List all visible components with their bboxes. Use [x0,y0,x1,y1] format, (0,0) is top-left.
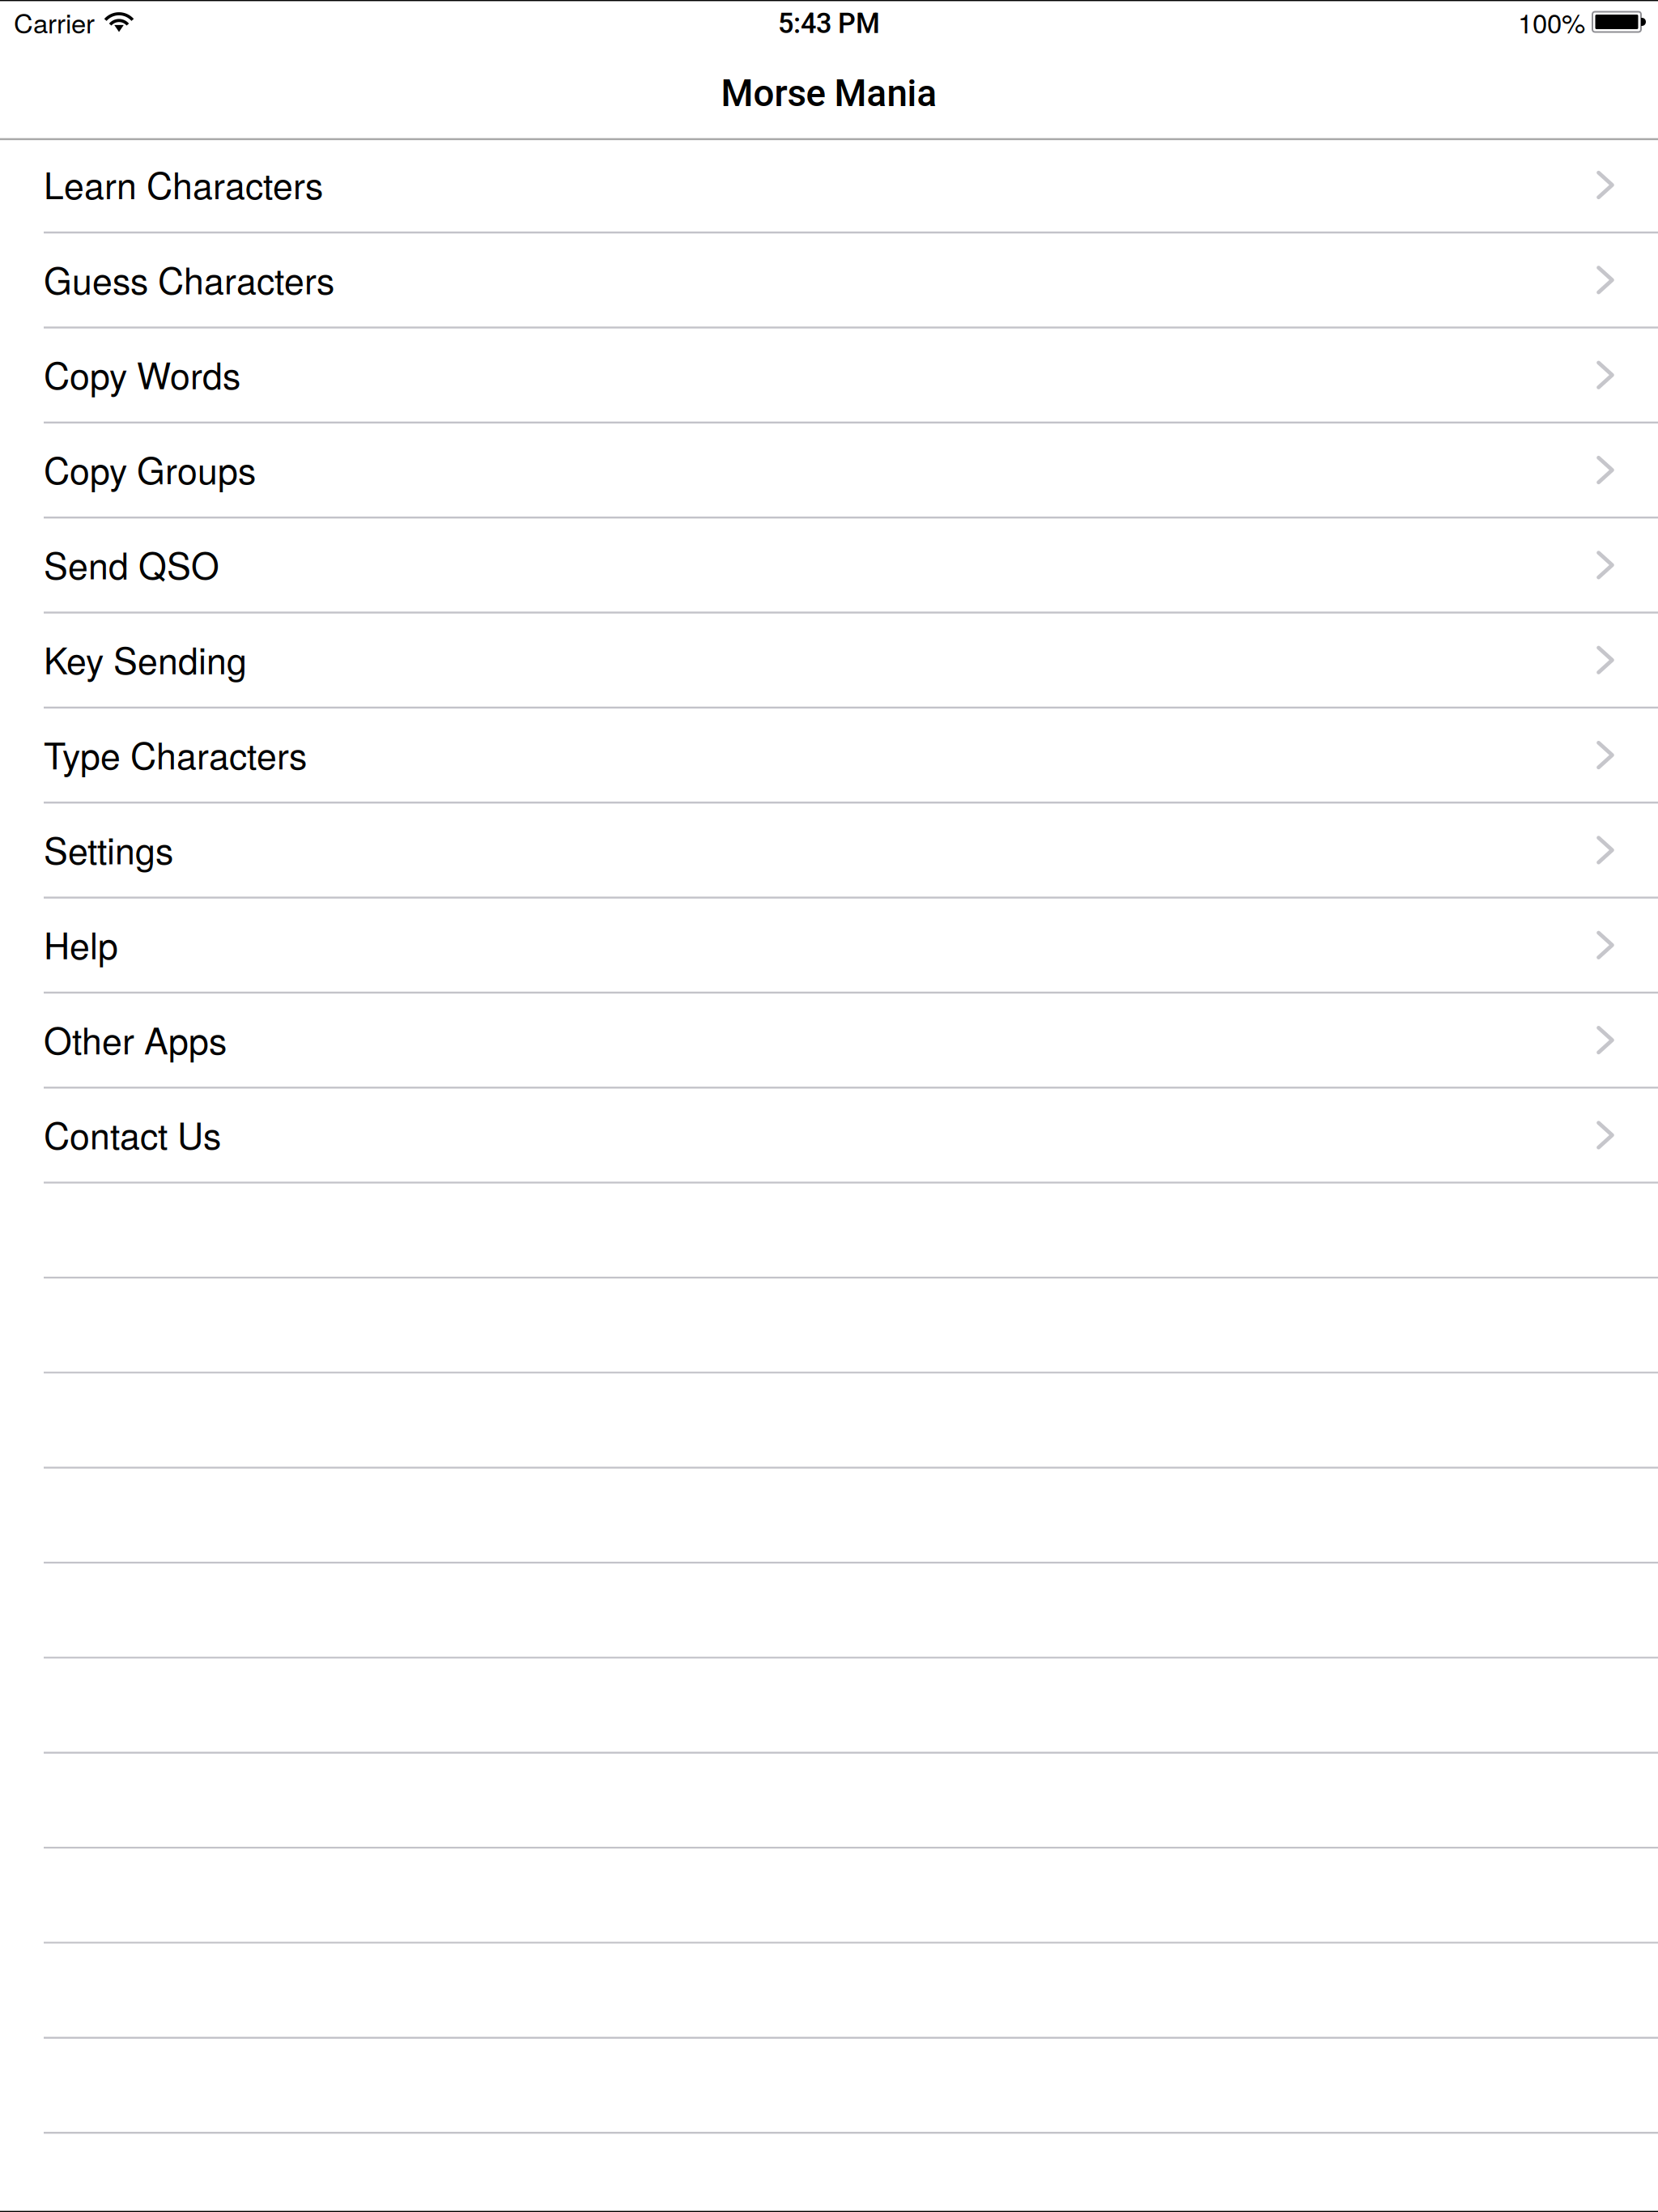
button[interactable]: Contact Us [0,1089,1658,1184]
button[interactable]: Key Sending [0,614,1658,709]
staticText: Carrier [14,3,95,41]
button[interactable]: Settings [0,804,1658,899]
staticText: Guess Characters [44,253,334,305]
staticText: Settings [44,823,173,875]
button[interactable]: Copy Groups [0,423,1658,518]
staticText: Key Sending [44,633,247,685]
staticText: Copy Words [44,348,240,399]
staticText: Help [44,918,118,970]
staticText: Morse Mania [721,72,937,115]
staticText: Copy Groups [44,443,256,495]
staticText: Send QSO [44,538,219,590]
button[interactable]: Copy Words [0,328,1658,423]
button[interactable]: Help [0,899,1658,994]
button[interactable]: Guess Characters [0,234,1658,328]
staticText: 5:43 PM [778,7,880,40]
button[interactable]: Other Apps [0,994,1658,1089]
button[interactable]: Send QSO [0,519,1658,613]
staticText: 100% [1518,3,1585,41]
staticText: Contact Us [44,1108,221,1160]
button[interactable]: Type Characters [0,709,1658,804]
staticText: Learn Characters [44,158,323,209]
button[interactable]: Learn Characters [0,138,1658,233]
staticText: Type Characters [44,728,307,780]
staticText: Other Apps [44,1013,227,1065]
